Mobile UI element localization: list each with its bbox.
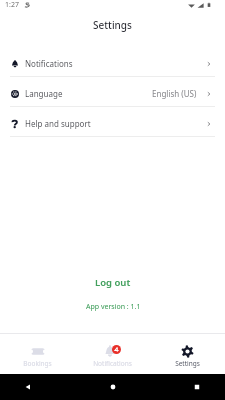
staticText: Help and support — [25, 118, 91, 129]
staticText: Language — [25, 88, 63, 99]
staticText: App version : 1.1 — [86, 302, 141, 312]
staticText: 1:27 — [5, 0, 19, 10]
button[interactable]: Language — [0, 77, 225, 106]
button[interactable]: Bookings — [0, 334, 75, 374]
staticText: Notifications — [93, 359, 132, 368]
staticText: Settings — [93, 18, 132, 32]
button[interactable]: Notifications — [0, 47, 225, 76]
staticText: Notifications — [25, 58, 73, 69]
staticText: Log out — [95, 276, 131, 289]
staticText: Settings — [175, 359, 200, 368]
button[interactable]: Help and support — [0, 107, 225, 136]
staticText: English (US) — [152, 88, 197, 99]
button[interactable]: Log out — [81, 272, 145, 293]
button[interactable]: Settings — [150, 334, 225, 374]
staticText: Bookings — [23, 359, 52, 368]
button[interactable]: Notifications — [75, 334, 150, 374]
